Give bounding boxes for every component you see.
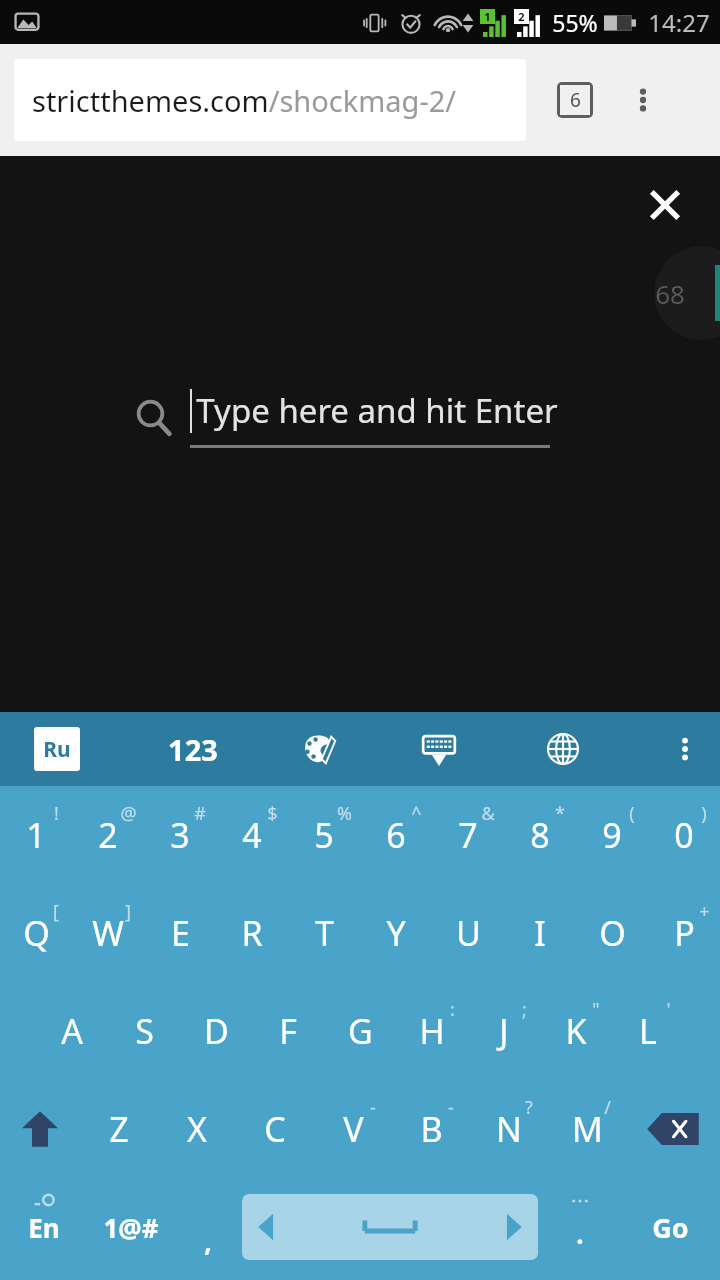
staticText: 6 <box>386 812 406 858</box>
staticText: R <box>241 910 263 956</box>
staticText: $ <box>267 801 278 826</box>
staticText: T <box>315 910 334 956</box>
button[interactable]: Space <box>242 1194 538 1260</box>
button[interactable]: @ <box>72 786 144 884</box>
button[interactable]: % <box>288 786 360 884</box>
button[interactable]: strictthemes.com/shockmag-2/ <box>14 59 526 141</box>
button[interactable]: ) <box>648 786 720 884</box>
button[interactable]: / <box>548 1080 626 1178</box>
staticText: : <box>450 997 455 1022</box>
staticText: U <box>456 910 481 956</box>
button[interactable]: 123 <box>162 724 224 775</box>
staticText: 2 <box>98 812 118 858</box>
button[interactable]: Go <box>621 1178 720 1276</box>
staticText: 0 <box>674 812 694 858</box>
button[interactable]: * <box>504 786 576 884</box>
button[interactable]: ' <box>612 982 684 1080</box>
staticText: 123 <box>168 730 218 769</box>
staticText: ! <box>54 801 59 826</box>
button[interactable]: 1@# <box>87 1178 174 1276</box>
button[interactable]: S <box>108 982 180 1080</box>
button[interactable]: Shift <box>0 1080 79 1178</box>
staticText: 7 <box>458 812 478 858</box>
button[interactable]: X <box>158 1080 236 1178</box>
button[interactable]: Ru <box>34 727 80 771</box>
button[interactable]: C <box>236 1080 314 1178</box>
button[interactable]: ^ <box>360 786 432 884</box>
staticText: 5 <box>314 812 334 858</box>
staticText: F <box>279 1008 297 1054</box>
button[interactable]: [ <box>0 884 72 982</box>
staticText: / <box>604 1095 611 1120</box>
button[interactable]: ] <box>72 884 144 982</box>
button[interactable]: I <box>504 884 576 982</box>
button[interactable]: - <box>314 1080 392 1178</box>
staticText: 2 <box>518 9 525 24</box>
button[interactable]: Keyboard settings <box>662 726 708 772</box>
button[interactable]: ! <box>0 786 72 884</box>
staticText: ( <box>629 801 635 826</box>
staticText: @ <box>120 801 137 826</box>
staticText: 1 <box>26 812 46 858</box>
staticText: 55% <box>552 7 598 38</box>
staticText: C <box>264 1106 286 1152</box>
staticText: H <box>419 1008 445 1054</box>
button[interactable]: ( <box>576 786 648 884</box>
staticText: E <box>171 910 190 956</box>
staticText: 8 <box>530 812 550 858</box>
staticText: P <box>674 910 695 956</box>
staticText: . <box>576 1216 584 1251</box>
button[interactable]: Y <box>360 884 432 982</box>
button[interactable]: + <box>648 884 720 982</box>
button[interactable]: Close search <box>632 172 698 238</box>
staticText: Go <box>652 1209 689 1246</box>
staticText: * <box>555 801 565 826</box>
button[interactable]: F <box>252 982 324 1080</box>
button[interactable]: & <box>432 786 504 884</box>
button[interactable]: R <box>216 884 288 982</box>
button[interactable]: . <box>538 1178 621 1276</box>
staticText: % <box>337 801 352 826</box>
button[interactable]: A <box>36 982 108 1080</box>
staticText: V <box>343 1106 364 1152</box>
staticText: ? <box>525 1095 533 1120</box>
staticText: strictthemes.com/shockmag-2/ <box>32 81 457 120</box>
button[interactable]: More options <box>616 73 670 127</box>
button[interactable]: Backspace <box>626 1080 720 1178</box>
staticText: D <box>204 1008 229 1054</box>
button[interactable]: ; <box>468 982 540 1080</box>
staticText: W <box>92 910 124 956</box>
staticText: O <box>599 910 626 956</box>
button[interactable]: $ <box>216 786 288 884</box>
button[interactable]: U <box>432 884 504 982</box>
staticText: 4 <box>242 812 262 858</box>
button[interactable]: D <box>180 982 252 1080</box>
button[interactable]: : <box>396 982 468 1080</box>
staticText: ' <box>666 997 671 1022</box>
button[interactable]: ? <box>470 1080 548 1178</box>
button[interactable]: , <box>174 1178 242 1276</box>
staticText: Z <box>109 1106 129 1152</box>
staticText: 3 <box>170 812 190 858</box>
button[interactable]: Z <box>79 1080 158 1178</box>
button[interactable]: Tabs <box>548 73 602 127</box>
button[interactable]: " <box>540 982 612 1080</box>
button[interactable]: E <box>144 884 216 982</box>
button[interactable]: O <box>576 884 648 982</box>
button[interactable]: Theme <box>296 726 342 772</box>
button[interactable]: - <box>392 1080 470 1178</box>
button[interactable]: Hide keyboard <box>416 726 462 772</box>
staticText: 1@# <box>103 1210 159 1245</box>
staticText: N <box>496 1106 522 1152</box>
staticText: G <box>348 1008 373 1054</box>
staticText: L <box>639 1008 657 1054</box>
staticText: " <box>592 997 600 1022</box>
button[interactable]: Change language <box>540 726 586 772</box>
staticText: [ <box>53 899 59 924</box>
staticText: # <box>194 801 206 826</box>
button[interactable]: T <box>288 884 360 982</box>
button[interactable]: En <box>0 1178 87 1276</box>
staticText: + <box>699 899 710 924</box>
button[interactable]: # <box>144 786 216 884</box>
button[interactable]: G <box>324 982 396 1080</box>
